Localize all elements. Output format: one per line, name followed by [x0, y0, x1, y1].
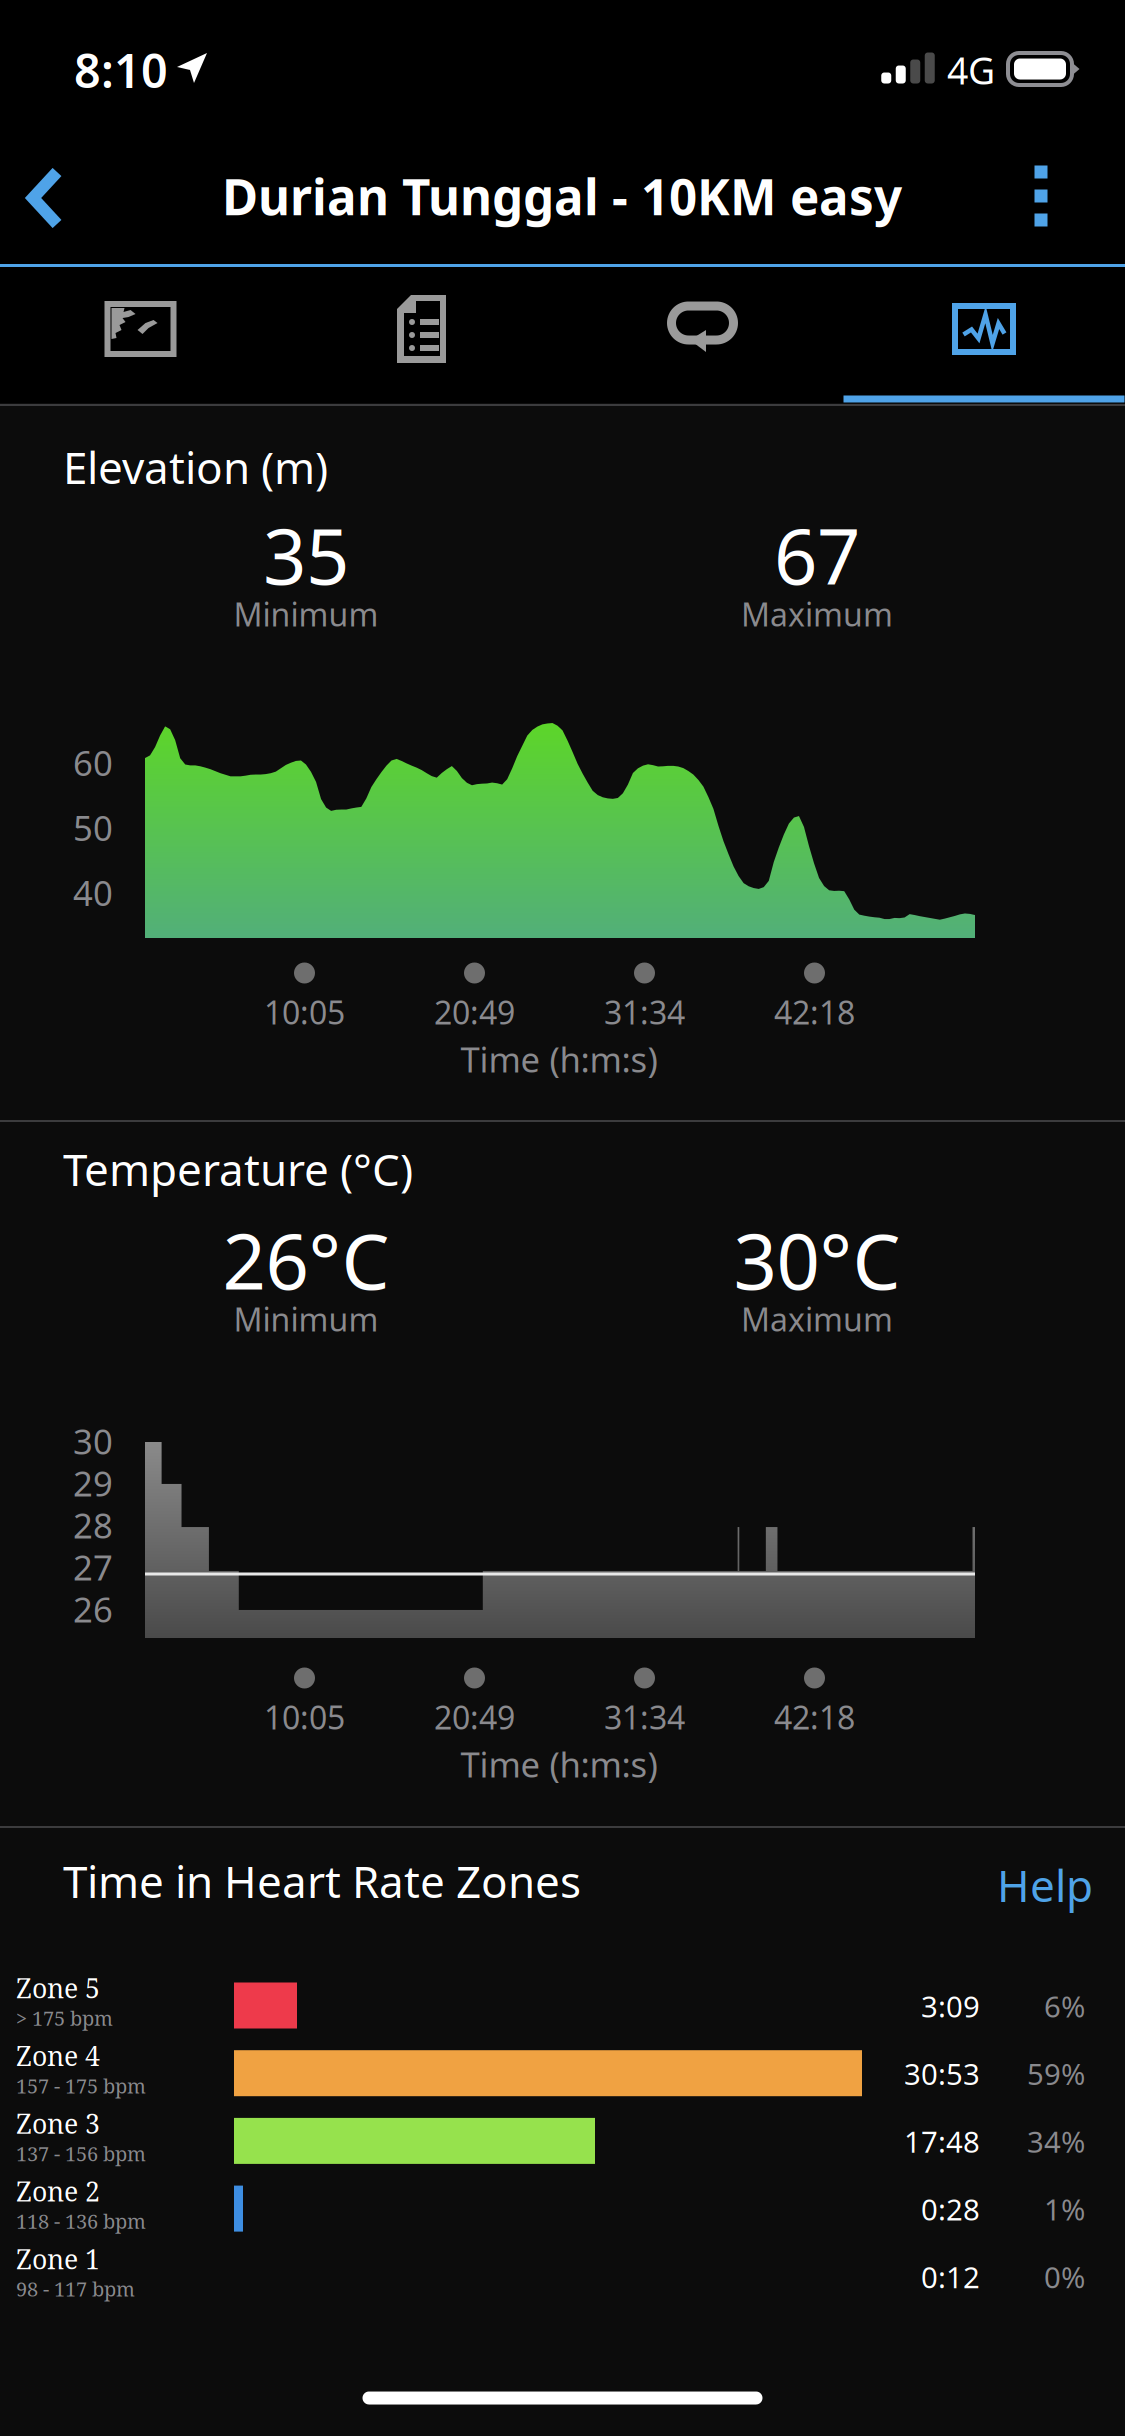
staticText: 17:48: [904, 2122, 980, 2161]
staticText: 20:49: [434, 991, 515, 1033]
staticText: 8:10: [74, 39, 168, 101]
staticText: Elevation (m): [63, 438, 328, 496]
staticText: 4G: [947, 45, 995, 95]
staticText: 30: [73, 1418, 113, 1464]
staticText: 31:34: [604, 991, 685, 1033]
staticText: Help: [997, 1856, 1093, 1914]
staticText: 29: [73, 1460, 113, 1506]
button[interactable]: Laps: [562, 261, 843, 397]
staticText: 28: [73, 1502, 113, 1548]
staticText: 0%: [1044, 2257, 1085, 2296]
staticText: 6%: [1044, 1986, 1085, 2025]
button[interactable]: Back: [0, 138, 105, 258]
staticText: Temperature (°C): [63, 1140, 413, 1198]
staticText: 10:05: [264, 991, 345, 1033]
staticText: 40: [73, 869, 113, 915]
staticText: 0:12: [921, 2257, 980, 2296]
staticText: 1%: [1044, 2190, 1085, 2229]
staticText: 60: [73, 739, 113, 785]
staticText: Minimum: [233, 1298, 378, 1340]
staticText: 34%: [1027, 2122, 1085, 2161]
staticText: > 175 bpm: [16, 2004, 113, 2032]
staticText: Maximum: [741, 1298, 893, 1340]
staticText: 50: [73, 804, 113, 850]
staticText: Zone 1: [16, 2241, 100, 2277]
staticText: 35: [263, 504, 349, 605]
staticText: 137 - 156 bpm: [16, 2140, 146, 2167]
staticText: 31:34: [604, 1696, 685, 1738]
button[interactable]: More options: [986, 136, 1096, 256]
staticText: 42:18: [774, 991, 855, 1033]
staticText: Time (h:m:s): [460, 1036, 657, 1082]
staticText: 0:28: [921, 2190, 980, 2229]
staticText: 26°C: [222, 1209, 389, 1310]
staticText: Time in Heart Rate Zones: [63, 1852, 581, 1910]
staticText: Minimum: [233, 593, 378, 635]
button[interactable]: Help: [933, 1853, 1093, 1917]
staticText: Maximum: [741, 593, 893, 635]
staticText: 26: [73, 1586, 113, 1632]
staticText: 157 - 175 bpm: [16, 2072, 146, 2099]
staticText: Zone 4: [16, 2037, 100, 2074]
staticText: 10:05: [264, 1696, 345, 1738]
staticText: 30:53: [904, 2054, 980, 2093]
staticText: Zone 5: [16, 1970, 100, 2006]
staticText: Time (h:m:s): [460, 1741, 657, 1787]
button[interactable]: Map: [0, 261, 281, 397]
staticText: 20:49: [434, 1696, 515, 1738]
button[interactable]: Charts: [843, 261, 1125, 397]
staticText: 118 - 136 bpm: [16, 2207, 146, 2235]
staticText: Zone 2: [16, 2173, 100, 2209]
staticText: 27: [73, 1544, 113, 1590]
staticText: 98 - 117 bpm: [16, 2275, 135, 2302]
staticText: 3:09: [921, 1986, 980, 2025]
button[interactable]: Details: [281, 261, 562, 397]
staticText: 59%: [1027, 2054, 1085, 2093]
staticText: Durian Tunggal - 10KM easy: [222, 163, 902, 229]
staticText: 42:18: [774, 1696, 855, 1738]
staticText: 67: [774, 504, 860, 605]
staticText: 30°C: [733, 1209, 900, 1310]
staticText: Zone 3: [16, 2105, 100, 2141]
